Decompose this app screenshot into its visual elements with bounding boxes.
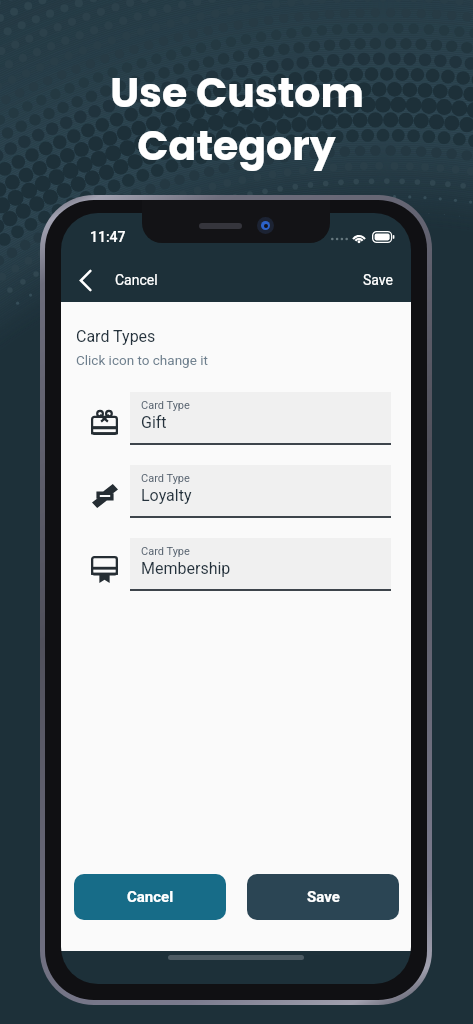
staticText: Card Types [76,327,156,346]
button[interactable]: Card Type [130,465,391,518]
staticText: Click icon to change it [76,352,208,368]
staticText: Loyalty [141,486,192,505]
staticText: Membership [141,559,231,578]
staticText: Cancel [127,888,174,906]
button[interactable]: Card Type [130,538,391,591]
staticText: Gift [141,413,167,432]
staticText: 11:47 [90,229,126,245]
staticText: Cancel [115,272,158,288]
staticText: Category [137,117,336,174]
button[interactable]: Cancel [111,264,162,296]
staticText: Card Type [141,545,190,558]
staticText: Save [363,272,393,288]
button[interactable]: Loyalty icon [61,465,130,518]
staticText: Card Type [141,399,190,412]
button[interactable]: Gift icon [61,392,130,445]
button[interactable]: Membership icon [61,538,130,591]
staticText: Card Type [141,472,190,485]
button[interactable]: Back [65,260,105,300]
button[interactable]: Card Type [130,392,391,445]
button[interactable]: Save [247,874,399,920]
button[interactable]: Cancel [74,874,226,920]
staticText: Save [307,888,340,906]
staticText: Use Custom [110,64,364,121]
button[interactable]: Save [359,264,397,296]
